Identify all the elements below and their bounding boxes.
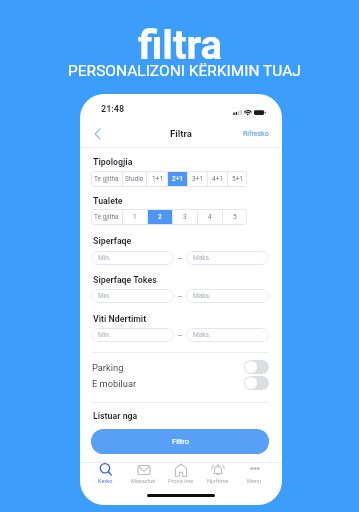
button[interactable]: 5 [223, 209, 247, 225]
button[interactable]: Min. [91, 289, 174, 303]
staticText: 1+1 [152, 175, 163, 183]
staticText: Kerko [98, 478, 113, 485]
button[interactable]: Maks. [186, 251, 269, 265]
staticText: Min. [98, 331, 111, 339]
staticText: Te gjitha [94, 175, 119, 183]
button[interactable]: 5+1 [228, 171, 247, 187]
button[interactable]: Rifresko [243, 130, 269, 138]
staticText: Rifresko [243, 130, 269, 138]
staticText: Studio [125, 175, 144, 183]
staticText: Viti Ndertimit [93, 314, 147, 324]
button[interactable]: Mesazhet [125, 463, 162, 485]
staticText: 2+1 [172, 175, 183, 183]
staticText: Mesazhet [131, 478, 156, 485]
staticText: Maks. [193, 331, 211, 339]
button[interactable]: 4 [198, 209, 222, 225]
staticText: Maks. [193, 254, 211, 262]
staticText: Tipologjia [93, 157, 133, 167]
staticText: Siperfaqe Tokes [93, 275, 157, 285]
button[interactable]: 3+1 [188, 171, 207, 187]
button[interactable]: Parking [92, 360, 269, 374]
staticText: Filtra [170, 128, 192, 139]
button[interactable]: Maks. [186, 328, 269, 342]
staticText: PERSONALIZONI KËRKIMIN TUAJ [68, 62, 301, 80]
button[interactable]: 2 [148, 209, 172, 225]
button[interactable]: Te gjitha [91, 209, 122, 225]
staticText: Tualete [93, 196, 123, 206]
staticText: 3+1 [192, 175, 203, 183]
button[interactable]: Te gjitha [91, 171, 122, 187]
staticText: Listuar nga [93, 411, 138, 421]
button[interactable]: Min. [91, 251, 174, 265]
button[interactable]: E mobiluar [92, 376, 269, 390]
button[interactable]: Studio [123, 171, 146, 187]
button[interactable]: Njoftime [199, 463, 236, 485]
button[interactable]: Menu [236, 463, 273, 485]
button[interactable]: 4+1 [208, 171, 227, 187]
staticText: 2 [158, 213, 162, 221]
staticText: Maks. [193, 292, 211, 300]
staticText: Te gjitha [94, 213, 119, 221]
staticText: 1 [133, 213, 137, 221]
staticText: Menu [247, 478, 262, 485]
staticText: 4+1 [212, 175, 223, 183]
staticText: 5 [233, 213, 237, 221]
button[interactable]: Min. [91, 328, 174, 342]
button[interactable]: 1+1 [147, 171, 167, 187]
button[interactable]: 2+1 [168, 171, 187, 187]
button[interactable]: Filtro [91, 429, 269, 454]
staticText: Njoftime [207, 478, 229, 485]
staticText: Parking [92, 362, 124, 373]
staticText: 21:48 [101, 104, 125, 115]
button[interactable]: Kerko [87, 463, 124, 485]
staticText: Min. [98, 292, 111, 300]
staticText: E mobiluar [92, 378, 137, 389]
button[interactable]: 3 [173, 209, 197, 225]
staticText: filtra [138, 22, 222, 69]
button[interactable]: 1 [123, 209, 147, 225]
staticText: 3 [183, 213, 187, 221]
staticText: Filtro [172, 437, 189, 446]
button[interactable]: Maks. [186, 289, 269, 303]
button[interactable]: Prona ime [162, 463, 199, 485]
staticText: 5+1 [232, 175, 243, 183]
staticText: 4 [208, 213, 212, 221]
staticText: Prona ime [168, 478, 194, 485]
staticText: Siperfaqe [93, 236, 132, 246]
button[interactable]: Back [89, 125, 107, 143]
staticText: Min. [98, 254, 111, 262]
